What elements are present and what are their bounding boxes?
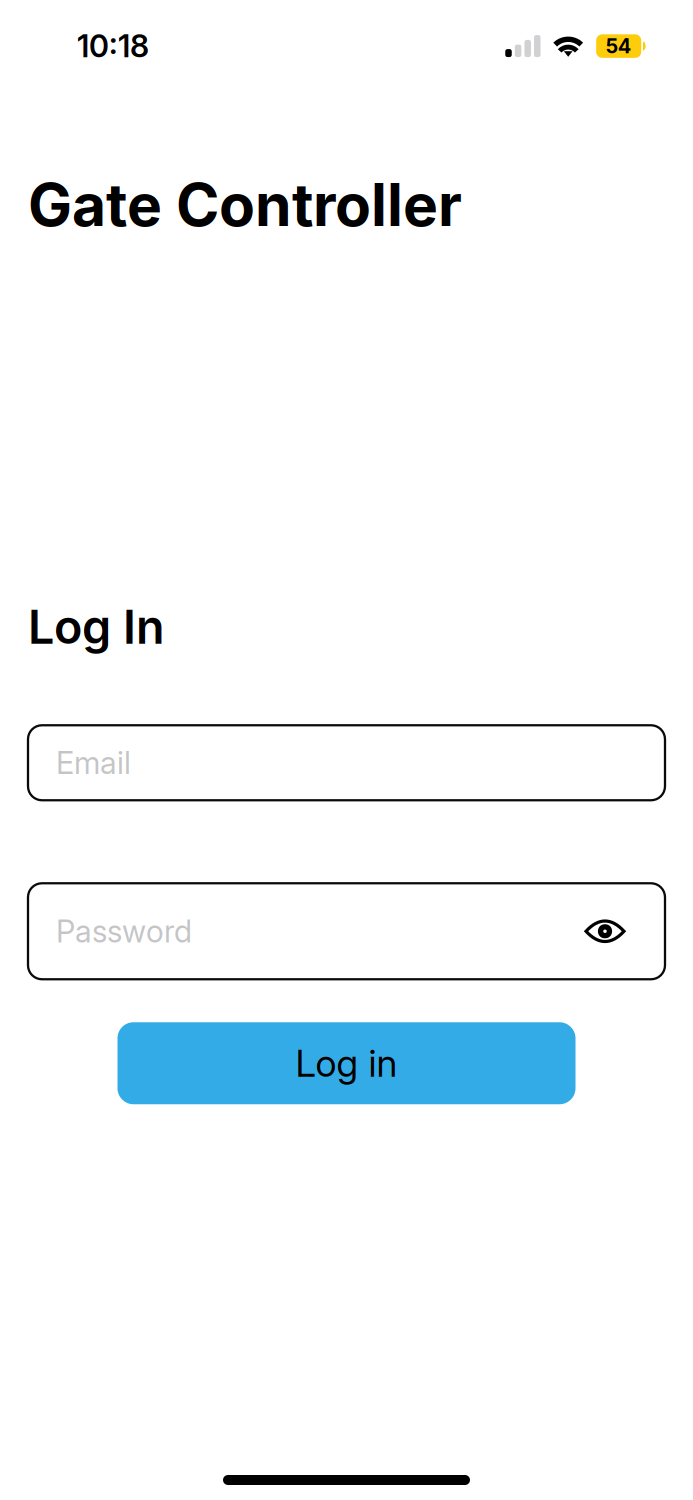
staticText: 10:18 — [77, 28, 149, 64]
button[interactable]: Password — [28, 883, 665, 979]
button[interactable]: Log in — [117, 1022, 575, 1104]
button[interactable]: Email — [28, 725, 665, 800]
staticText: Email — [56, 745, 131, 781]
button[interactable]: Show password — [562, 896, 665, 966]
staticText: 54 — [606, 34, 632, 58]
staticText: Gate Controller — [28, 170, 462, 239]
staticText: Log in — [295, 1041, 397, 1085]
staticText: Password — [56, 913, 192, 949]
staticText: Log In — [28, 599, 165, 654]
